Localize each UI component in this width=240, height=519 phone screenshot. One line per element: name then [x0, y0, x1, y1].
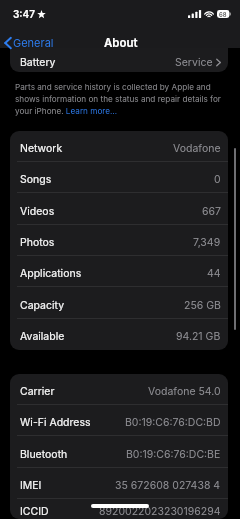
staticText: 94.21 GB	[176, 330, 221, 343]
button[interactable]: Network	[10, 131, 228, 162]
staticText: Network	[20, 142, 63, 155]
button[interactable]: Battery	[10, 48, 228, 72]
staticText: B0:19:C6:76:DC:BE	[126, 448, 221, 461]
staticText: 35 672608 027438 4	[115, 479, 221, 492]
button[interactable]: Songs	[10, 162, 228, 193]
staticText: Service	[175, 56, 213, 69]
staticText: Vodafone 54.0	[148, 385, 221, 398]
staticText: 3:47	[13, 8, 35, 20]
staticText: 0	[214, 173, 221, 186]
button[interactable]: Carrier	[10, 374, 228, 405]
button[interactable]: ICCID	[10, 499, 228, 519]
staticText: Carrier	[20, 385, 55, 398]
staticText: About	[104, 36, 138, 50]
staticText: Parts and service history is collected b…	[15, 82, 223, 116]
staticText: Battery	[20, 56, 56, 69]
staticText: ICCID	[20, 505, 49, 518]
button[interactable]: Photos	[10, 225, 228, 256]
staticText: IMEI	[20, 479, 42, 492]
button[interactable]: IMEI	[10, 468, 228, 499]
staticText: Wi-Fi Address	[20, 416, 91, 429]
button[interactable]: Bluetooth	[10, 436, 228, 468]
staticText: Photos	[20, 236, 55, 249]
button[interactable]: General	[0, 34, 60, 51]
staticText: Videos	[20, 205, 55, 218]
button[interactable]: Available	[10, 319, 228, 350]
button[interactable]: Capacity	[10, 287, 228, 319]
staticText: Available	[20, 330, 65, 343]
button[interactable]: Wi-Fi Address	[10, 405, 228, 436]
staticText: 667	[202, 205, 221, 218]
staticText: 7,349	[193, 236, 221, 249]
staticText: 8920022023230196294	[99, 505, 221, 518]
staticText: 256 GB	[184, 299, 221, 312]
staticText: Bluetooth	[20, 448, 68, 461]
staticText: Vodafone	[173, 142, 221, 155]
staticText: General	[13, 36, 54, 49]
button[interactable]: Videos	[10, 193, 228, 225]
button[interactable]: Applications	[10, 256, 228, 287]
staticText: B0:19:C6:76:DC:BD	[125, 416, 221, 429]
staticText: Capacity	[20, 299, 65, 312]
staticText: Applications	[20, 267, 82, 280]
staticText: Songs	[20, 173, 52, 186]
staticText: 68	[219, 11, 227, 18]
staticText: 44	[207, 267, 221, 280]
